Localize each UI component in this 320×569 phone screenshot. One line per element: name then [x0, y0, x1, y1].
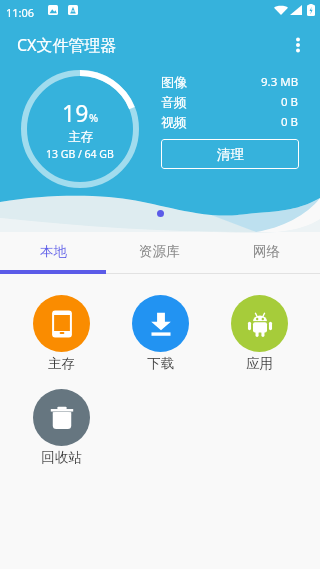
- button[interactable]: 网络: [213, 231, 320, 274]
- button[interactable]: 本地: [0, 231, 106, 274]
- staticText: 回收站: [41, 449, 82, 466]
- button[interactable]: 主存: [12, 295, 111, 372]
- staticText: 图像: [161, 74, 187, 90]
- staticText: CX文件管理器: [17, 34, 117, 56]
- button[interactable]: 清理: [161, 139, 299, 169]
- staticText: 19: [62, 97, 89, 128]
- staticText: 视频: [161, 114, 187, 130]
- staticText: 主存: [68, 129, 93, 145]
- staticText: 13 GB / 64 GB: [46, 147, 114, 161]
- staticText: 下载: [147, 355, 174, 372]
- button[interactable]: 资源库: [106, 231, 213, 274]
- staticText: 主存: [48, 355, 75, 372]
- button[interactable]: 下载: [111, 295, 210, 372]
- staticText: 9.3 MB: [261, 74, 299, 90]
- button[interactable]: 应用: [210, 295, 309, 372]
- staticText: 清理: [217, 146, 244, 163]
- staticText: 音频: [161, 94, 187, 110]
- staticText: 0 B: [281, 94, 299, 110]
- button[interactable]: 回收站: [12, 389, 111, 466]
- button[interactable]: More options: [276, 23, 320, 67]
- staticText: 资源库: [139, 243, 180, 260]
- staticText: 本地: [40, 243, 67, 260]
- staticText: 网络: [253, 243, 280, 260]
- staticText: 11:06: [6, 5, 35, 20]
- staticText: 应用: [246, 355, 273, 372]
- staticText: %: [89, 110, 99, 125]
- staticText: 0 B: [281, 114, 299, 130]
